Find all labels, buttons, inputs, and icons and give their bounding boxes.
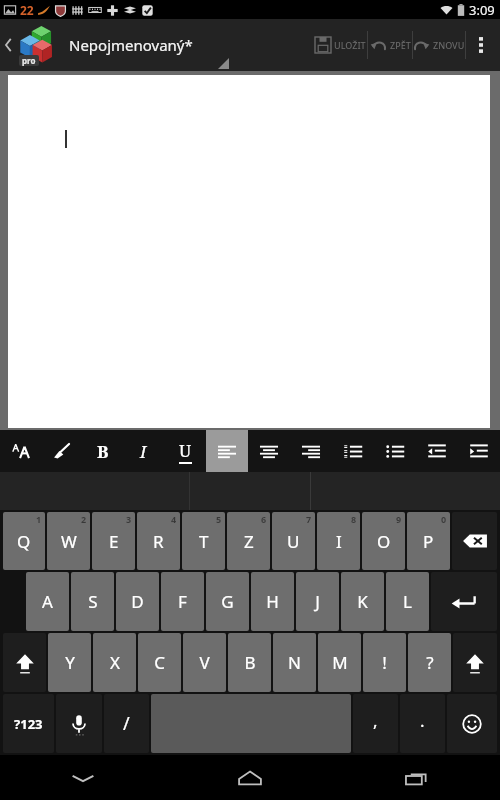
staticText: J: [315, 590, 320, 613]
button[interactable]: P: [407, 512, 450, 570]
button[interactable]: Back to OfficeSuite: [0, 19, 59, 71]
button[interactable]: ZPĚT: [368, 19, 412, 71]
staticText: N: [288, 651, 301, 674]
staticText: pro: [22, 55, 36, 66]
button[interactable]: Font size: [0, 430, 41, 472]
button[interactable]: D: [116, 572, 159, 631]
button[interactable]: /: [104, 694, 149, 753]
button[interactable]: S: [71, 572, 114, 631]
button[interactable]: Shift: [453, 633, 497, 692]
button[interactable]: W: [47, 512, 90, 570]
staticText: 3:09: [469, 1, 495, 19]
button[interactable]: ZNOVU: [413, 19, 465, 71]
staticText: 0: [441, 513, 447, 525]
button[interactable]: Voice input: [56, 694, 102, 753]
button[interactable]: .: [400, 694, 445, 753]
button[interactable]: Highlight: [41, 430, 82, 472]
button[interactable]: X: [93, 633, 136, 692]
staticText: U: [179, 439, 192, 462]
button[interactable]: Italic: [123, 430, 164, 472]
button[interactable]: Z: [227, 512, 270, 570]
staticText: D: [131, 590, 144, 613]
staticText: ULOŽIT: [334, 39, 366, 51]
button[interactable]: Y: [48, 633, 91, 692]
button[interactable]: E: [92, 512, 135, 570]
staticText: P: [423, 530, 434, 553]
staticText: B: [97, 440, 109, 463]
button[interactable]: ?: [408, 633, 451, 692]
button[interactable]: C: [138, 633, 181, 692]
staticText: 8: [351, 513, 357, 525]
staticText: I: [336, 530, 342, 553]
button[interactable]: K: [341, 572, 384, 631]
staticText: 6: [261, 513, 267, 525]
button[interactable]: L: [386, 572, 429, 631]
button[interactable]: Numbered list: [332, 430, 374, 472]
button[interactable]: O: [362, 512, 405, 570]
staticText: .: [420, 709, 425, 732]
staticText: Z: [244, 530, 254, 553]
button[interactable]: Emoji: [447, 694, 497, 753]
button[interactable]: ULOŽIT: [313, 19, 367, 71]
button[interactable]: B: [228, 633, 271, 692]
button[interactable]: Shift: [3, 633, 46, 692]
button[interactable]: Recent apps: [333, 755, 500, 800]
staticText: L: [403, 590, 412, 613]
button[interactable]: Increase indent: [458, 430, 500, 472]
staticText: B: [244, 651, 256, 674]
button[interactable]: Align right: [290, 430, 332, 472]
button[interactable]: Hide keyboard: [0, 755, 166, 800]
button[interactable]: Underline: [164, 430, 206, 472]
button[interactable]: F: [161, 572, 204, 631]
staticText: T: [199, 530, 209, 553]
button[interactable]: T: [182, 512, 225, 570]
button[interactable]: J: [296, 572, 339, 631]
button[interactable]: G: [206, 572, 249, 631]
staticText: Y: [65, 651, 75, 674]
staticText: ?: [426, 651, 434, 674]
staticText: F: [178, 590, 187, 613]
button[interactable]: V: [183, 633, 226, 692]
button[interactable]: H: [251, 572, 294, 631]
staticText: K: [357, 590, 368, 613]
staticText: 5: [216, 513, 222, 525]
button[interactable]: Q: [3, 512, 45, 570]
staticText: V: [199, 651, 210, 674]
staticText: 22: [20, 2, 34, 18]
staticText: 3: [126, 513, 132, 525]
button[interactable]: Bold: [82, 430, 123, 472]
button[interactable]: U: [272, 512, 315, 570]
button[interactable]: Enter: [431, 572, 497, 631]
button[interactable]: M: [318, 633, 361, 692]
button[interactable]: N: [273, 633, 316, 692]
staticText: ,: [373, 709, 378, 732]
button[interactable]: !: [363, 633, 406, 692]
button[interactable]: Bullet list: [374, 430, 416, 472]
button[interactable]: Align left: [206, 430, 248, 472]
staticText: U: [287, 530, 300, 553]
staticText: 2: [81, 513, 87, 525]
staticText: H: [266, 590, 279, 613]
staticText: /: [123, 711, 130, 736]
button[interactable]: ?123: [3, 694, 54, 753]
button[interactable]: I: [317, 512, 360, 570]
button[interactable]: Decrease indent: [416, 430, 458, 472]
staticText: X: [110, 651, 120, 674]
button[interactable]: R: [137, 512, 180, 570]
button[interactable]: Home: [166, 755, 333, 800]
staticText: 9: [396, 513, 402, 525]
button[interactable]: More options: [466, 19, 496, 71]
button[interactable]: A: [26, 572, 69, 631]
staticText: ZNOVU: [433, 39, 465, 51]
button[interactable]: ,: [353, 694, 398, 753]
staticText: E: [109, 530, 119, 553]
button[interactable]: Backspace: [452, 512, 497, 570]
staticText: W: [61, 530, 77, 553]
button[interactable]: Align center: [248, 430, 290, 472]
staticText: ZPĚT: [390, 39, 411, 51]
